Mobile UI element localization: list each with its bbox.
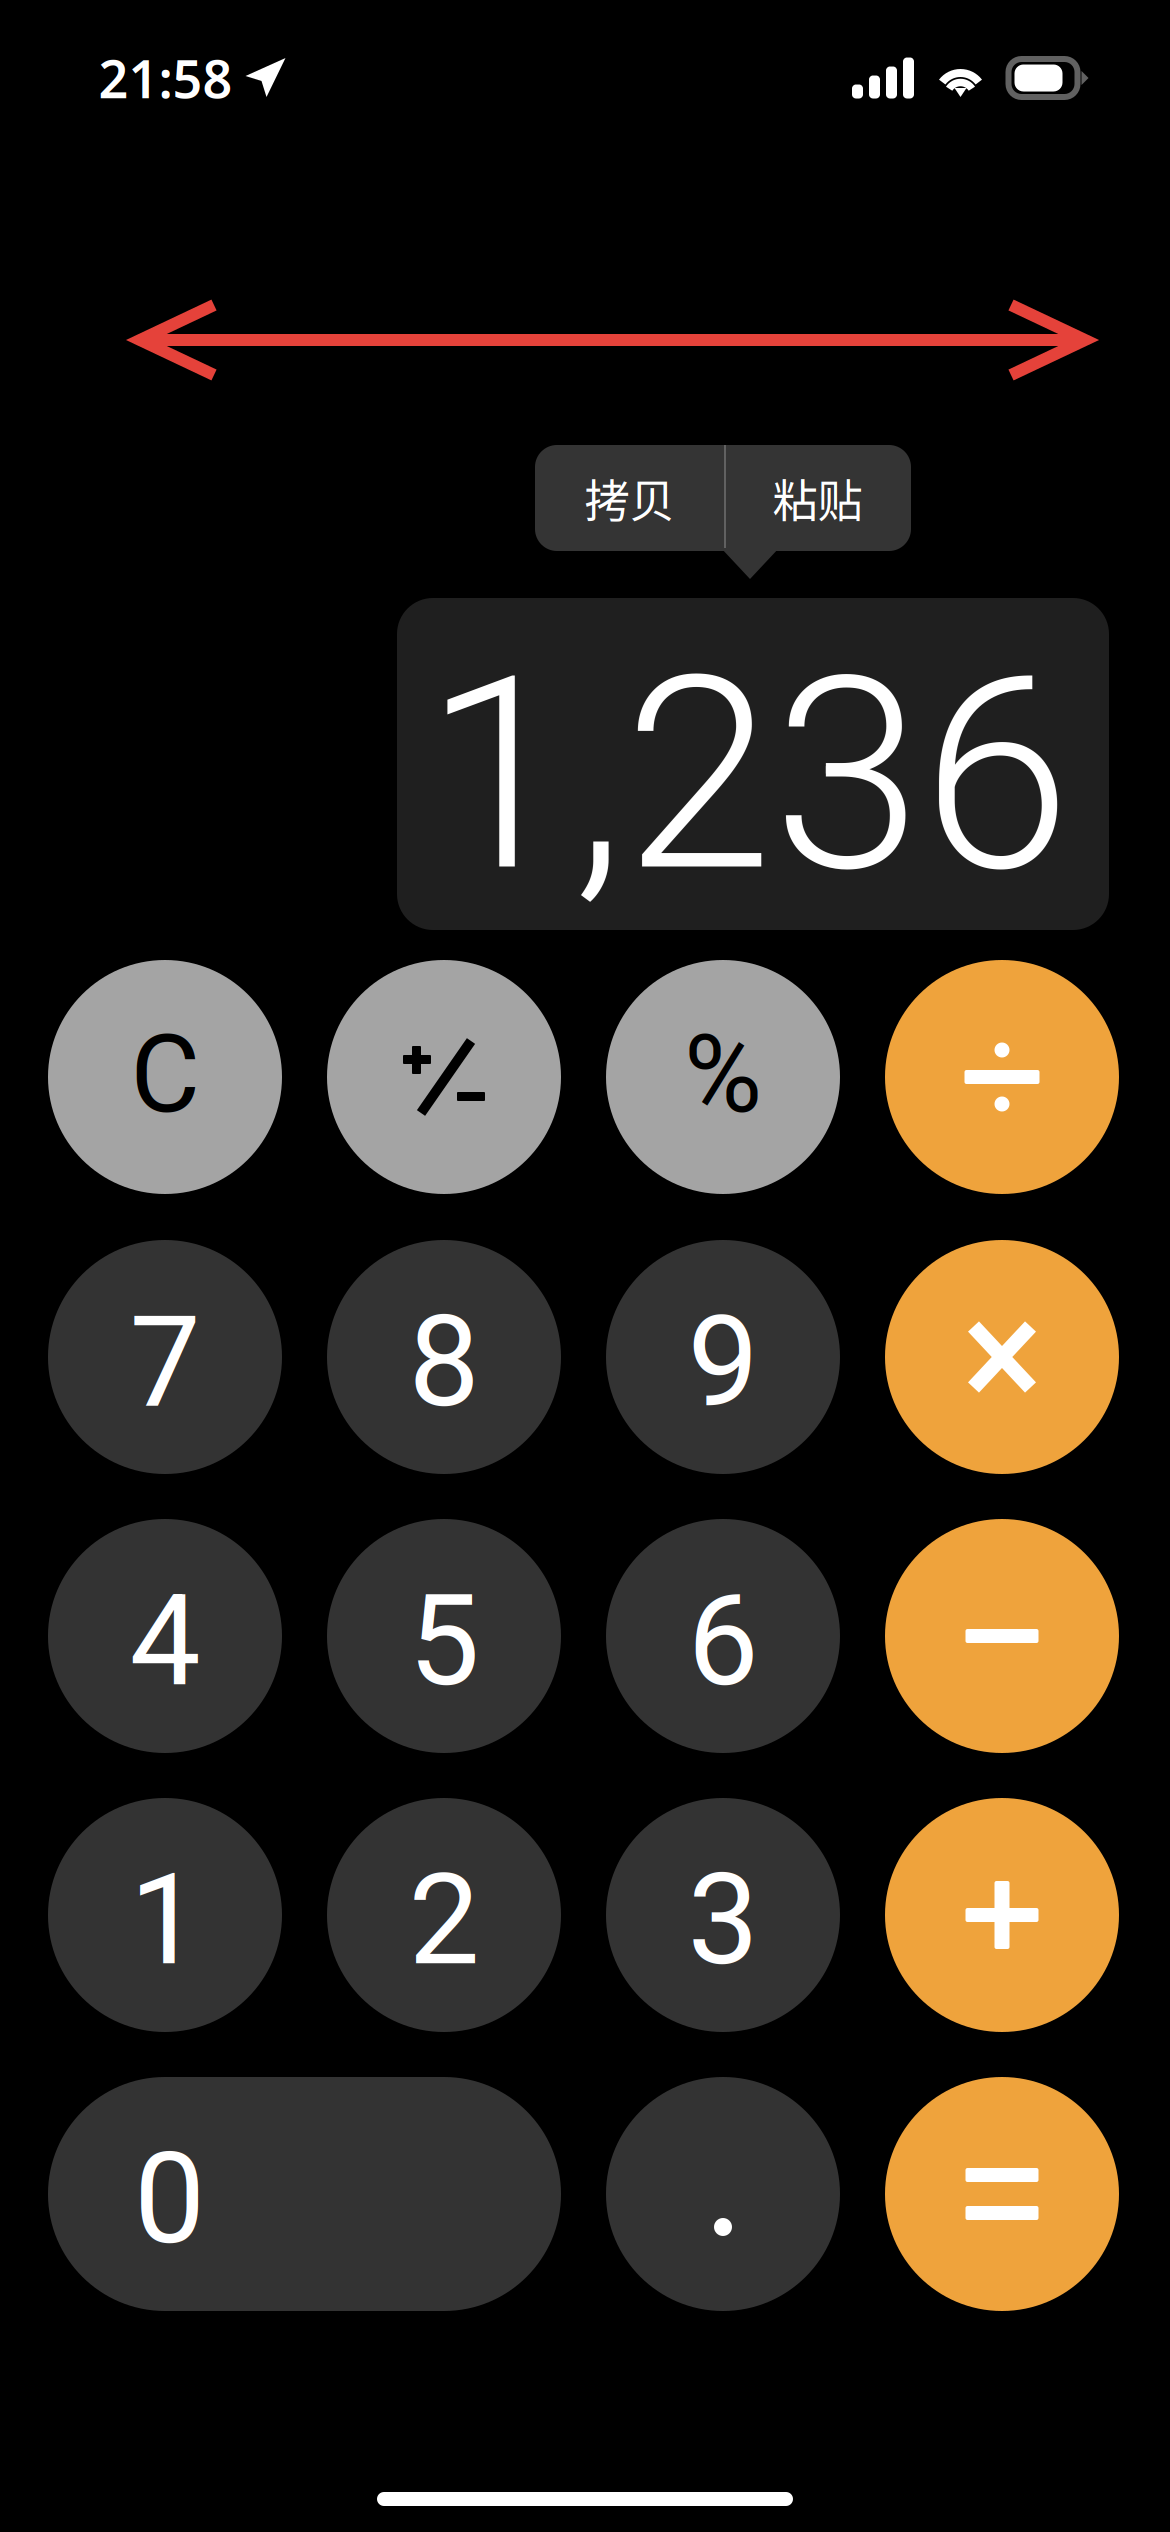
staticText: 9 [687,1288,758,1436]
button[interactable]: 粘贴 [724,445,911,551]
button[interactable]: Decimal point [606,2077,840,2311]
button[interactable]: 4 [48,1519,282,1753]
staticText: 6 [687,1567,758,1715]
staticText: 2 [408,1846,479,1994]
staticText: 21:58 [98,43,232,113]
button[interactable]: Equals [885,2077,1119,2311]
button[interactable]: 3 [606,1798,840,2032]
staticText: 1 [129,1846,200,1994]
button[interactable]: 1 [48,1798,282,2032]
button[interactable]: 7 [48,1240,282,1474]
button[interactable]: Plus minus [327,960,561,1194]
button[interactable]: Plus [885,1798,1119,2032]
staticText: 3 [687,1846,758,1994]
staticText: 5 [408,1567,479,1715]
staticText: 0 [134,2125,205,2273]
button[interactable]: 9 [606,1240,840,1474]
button[interactable]: 0 [48,2077,561,2311]
staticText: 7 [129,1288,200,1436]
button[interactable]: Clear [48,960,282,1194]
button[interactable]: 8 [327,1240,561,1474]
staticText: 4 [129,1567,200,1715]
button[interactable]: 5 [327,1519,561,1753]
staticText: C [130,1012,199,1137]
button[interactable]: Multiply [885,1240,1119,1474]
staticText: 1,236 [424,618,1071,932]
staticText: % [684,1012,762,1137]
button[interactable]: 拷贝 [535,445,724,551]
button[interactable]: Percent [606,960,840,1194]
staticText: 8 [408,1288,479,1436]
button[interactable]: Divide [885,960,1119,1194]
button[interactable]: Minus [885,1519,1119,1753]
staticText: 拷贝 [584,465,674,531]
button[interactable]: 6 [606,1519,840,1753]
staticText: 粘贴 [772,465,862,531]
button[interactable]: 2 [327,1798,561,2032]
